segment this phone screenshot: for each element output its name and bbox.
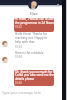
staticText: 10:33 — [15, 45, 22, 49]
staticText: Eliza — [30, 11, 38, 16]
staticText: 10:34 — [15, 55, 22, 59]
staticText: Hello there! Thanks for — [15, 32, 48, 36]
staticText: 10:36 — [15, 81, 22, 85]
staticText: Could you also send me the session — [15, 73, 66, 77]
staticText: Here is the schedule — [15, 51, 44, 55]
staticText: 10:32 — [15, 25, 22, 29]
button[interactable] — [14, 18, 54, 32]
button[interactable] — [14, 70, 54, 86]
staticText: Hi there, I would like to ask about — [15, 17, 63, 21]
staticText: Ok, thank you so much for the help. — [15, 70, 66, 74]
staticText: details please — [15, 77, 35, 81]
button[interactable]: Profile photo — [28, 0, 38, 10]
staticText: the programme in 24 November — [15, 21, 61, 25]
staticText: help with that — [15, 40, 35, 44]
button[interactable]: Close — [56, 3, 60, 7]
staticText: Type your message here — [2, 90, 41, 95]
button[interactable]: Type a message — [0, 88, 67, 100]
staticText: reaching out. Happy to — [15, 36, 48, 40]
